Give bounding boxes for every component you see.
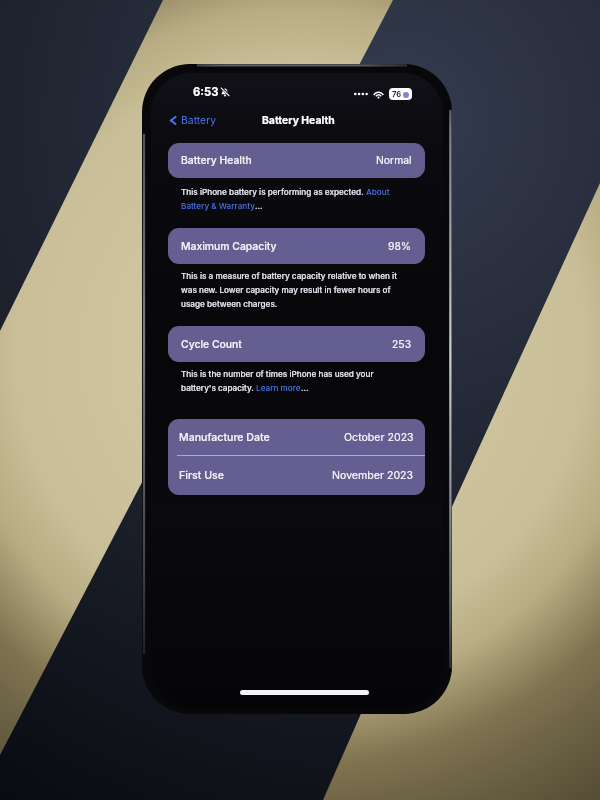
staticText: October 2023	[344, 431, 414, 444]
staticText: This iPhone battery is performing as exp…	[181, 187, 366, 197]
button[interactable]: Battery	[165, 112, 220, 129]
staticText: usage between charges.	[181, 299, 278, 309]
staticText: Cycle Count	[181, 338, 242, 351]
staticText: Manufacture Date	[179, 431, 270, 444]
staticText: 76	[392, 90, 402, 99]
other: Silent mode	[220, 87, 230, 97]
staticText: Battery Health	[181, 154, 252, 167]
staticText: Battery	[181, 114, 217, 127]
button[interactable]: Maximum Capacity	[168, 228, 425, 264]
staticText: This is a measure of battery capacity re…	[181, 271, 397, 281]
staticText: 98%	[388, 240, 412, 253]
button[interactable]: Manufacture Date	[168, 419, 425, 455]
staticText: About	[366, 187, 390, 197]
staticText: 253	[392, 338, 412, 351]
staticText: Learn more	[256, 383, 301, 393]
staticText: November 2023	[332, 469, 414, 482]
staticText: Maximum Capacity	[181, 240, 277, 253]
staticText: First Use	[179, 469, 224, 482]
staticText: Battery Health	[262, 114, 335, 127]
button[interactable]: First Use	[168, 456, 425, 495]
staticText: was new. Lower capacity may result in fe…	[181, 285, 391, 295]
staticText: 6:53	[193, 85, 219, 99]
staticText: This is the number of times iPhone has u…	[181, 369, 374, 379]
staticText: Battery & Warranty	[181, 201, 255, 211]
staticText: Normal	[376, 154, 412, 167]
button[interactable]: Battery Health	[168, 143, 425, 178]
button[interactable]: Cycle Count	[168, 326, 425, 362]
staticText: battery's capacity.	[181, 383, 256, 393]
staticText: ...	[255, 201, 263, 211]
staticText: ...	[301, 383, 309, 393]
